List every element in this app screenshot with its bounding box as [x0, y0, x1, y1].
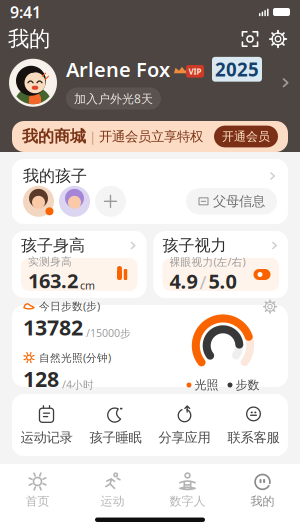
staticText: 128 — [23, 365, 59, 393]
staticText: 开通会员 — [222, 129, 270, 144]
button[interactable]: 孩子睡眠 — [81, 404, 150, 446]
staticText: 数字人 — [169, 494, 205, 509]
button[interactable]: 设置 — [264, 25, 292, 53]
button[interactable]: 设置目标 — [263, 300, 277, 314]
button[interactable]: 首页 — [0, 471, 75, 509]
staticText: 裸眼视力(左/右) — [169, 255, 245, 269]
staticText: 9:41 — [10, 1, 41, 23]
staticText: 我的孩子 — [23, 166, 87, 186]
button[interactable]: 父母信息 — [186, 188, 277, 214]
staticText: 首页 — [25, 494, 49, 509]
staticText: 2025 — [215, 57, 259, 82]
staticText: 13782 — [23, 313, 83, 341]
staticText: 孩子睡眠 — [89, 429, 141, 446]
button[interactable]: 联系客服 — [219, 404, 288, 446]
staticText: cm — [80, 278, 95, 292]
staticText: 运动 — [100, 494, 124, 509]
button[interactable]: 扫一扫 — [236, 25, 264, 53]
staticText: /15000步 — [86, 326, 131, 340]
button[interactable]: 运动 — [75, 471, 150, 509]
button[interactable]: 孩子 — [23, 186, 54, 217]
button[interactable]: 分享应用 — [150, 404, 219, 446]
staticText: /4小时 — [62, 377, 94, 391]
staticText: 孩子身高 — [21, 236, 85, 255]
staticText: / — [199, 270, 206, 294]
button[interactable]: 添加孩子 — [95, 186, 126, 217]
button[interactable]: 我的 — [225, 471, 300, 509]
staticText: 步数 — [235, 378, 259, 392]
staticText: 今日步数(步) — [39, 299, 100, 313]
button[interactable]: 数字人 — [150, 471, 225, 509]
staticText: 分享应用 — [158, 429, 210, 446]
staticText: 联系客服 — [227, 429, 279, 446]
staticText: 我的商城 — [22, 127, 86, 146]
staticText: 4.9 — [169, 268, 197, 294]
button[interactable]: 孩子 — [59, 186, 90, 217]
staticText: 开通会员立享特权 — [99, 128, 203, 145]
staticText: Arlene Fox — [66, 56, 170, 83]
staticText: VIP — [188, 66, 201, 77]
staticText: 孩子视力 — [162, 236, 226, 255]
staticText: 我的 — [8, 26, 50, 52]
staticText: 光照 — [194, 378, 218, 392]
staticText: 父母信息 — [213, 193, 265, 209]
staticText: 运动记录 — [20, 429, 72, 446]
staticText: | — [86, 128, 99, 145]
staticText: 5.0 — [208, 268, 236, 294]
button[interactable]: 孩子视力 — [153, 231, 288, 298]
staticText: 自然光照(分钟) — [39, 350, 111, 365]
button[interactable]: Arlene Fox — [0, 54, 300, 109]
staticText: 实测身高 — [28, 255, 72, 268]
staticText: 163.2 — [28, 267, 78, 294]
button[interactable]: 运动记录 — [12, 404, 81, 446]
staticText: 加入户外光8天 — [74, 91, 153, 106]
staticText: 我的 — [250, 494, 274, 509]
button[interactable]: 孩子身高 — [12, 231, 146, 298]
button[interactable]: 我的商城 — [12, 121, 288, 152]
